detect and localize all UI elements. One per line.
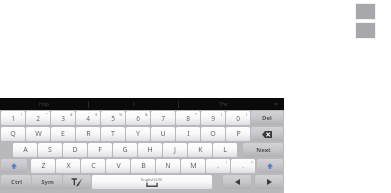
- button[interactable]: U: [151, 127, 175, 141]
- button[interactable]: Y: [126, 127, 150, 141]
- staticText: 4: [86, 114, 90, 123]
- button[interactable]: Next: [243, 143, 283, 157]
- button[interactable]: J: [163, 143, 187, 157]
- staticText: P: [236, 129, 241, 139]
- staticText: ): [246, 112, 248, 117]
- button[interactable]: Left: [223, 175, 251, 189]
- staticText: N: [165, 161, 171, 171]
- button[interactable]: Shift: [1, 159, 27, 173]
- staticText: 6: [136, 114, 140, 123]
- button[interactable]: R: [76, 127, 100, 141]
- staticText: 7: [161, 114, 165, 123]
- button[interactable]: I: [176, 127, 200, 141]
- button[interactable]: S: [38, 143, 62, 157]
- button[interactable]: T: [101, 127, 125, 141]
- staticText: ': [172, 112, 173, 117]
- button[interactable]: Right: [255, 175, 283, 189]
- button[interactable]: 1: [1, 111, 25, 125]
- staticText: Z: [41, 161, 46, 171]
- button[interactable]: More suggestions: [268, 98, 284, 110]
- staticText: Sym: [41, 178, 54, 186]
- staticText: Next: [256, 146, 271, 154]
- staticText: G: [122, 145, 128, 155]
- button[interactable]: The: [179, 98, 268, 110]
- button[interactable]: Hop: [0, 98, 88, 110]
- staticText: 2: [36, 114, 40, 123]
- button[interactable]: 5: [101, 111, 125, 125]
- button[interactable]: A: [13, 143, 37, 157]
- button[interactable]: Z: [31, 159, 55, 173]
- staticText: 0: [236, 114, 240, 123]
- staticText: Hop: [39, 101, 49, 108]
- button[interactable]: 4: [76, 111, 100, 125]
- staticText: L: [223, 145, 227, 155]
- button[interactable]: Backspace: [251, 127, 283, 141]
- staticText: X: [66, 161, 71, 171]
- button[interactable]: 6: [126, 111, 150, 125]
- staticText: !: [21, 112, 23, 117]
- staticText: 3: [61, 114, 65, 123]
- staticText: Ctrl: [11, 178, 22, 186]
- button[interactable]: 0: [226, 111, 250, 125]
- staticText: (: [221, 112, 223, 117]
- staticText: T: [111, 129, 115, 139]
- staticText: S: [48, 145, 52, 155]
- button[interactable]: Q: [1, 127, 25, 141]
- button[interactable]: F: [88, 143, 112, 157]
- button[interactable]: ,: [206, 159, 230, 173]
- staticText: O: [210, 129, 216, 139]
- staticText: 8: [186, 114, 190, 123]
- staticText: I: [133, 101, 135, 108]
- button[interactable]: K: [188, 143, 212, 157]
- staticText: J: [174, 145, 176, 155]
- staticText: M: [190, 161, 197, 171]
- button[interactable]: E: [51, 127, 75, 141]
- button[interactable]: Shift: [257, 159, 283, 173]
- staticText: A: [23, 145, 28, 155]
- button[interactable]: H: [138, 143, 162, 157]
- button[interactable]: W: [26, 127, 50, 141]
- button[interactable]: X: [56, 159, 80, 173]
- staticText: ": [46, 112, 48, 117]
- staticText: Q: [10, 129, 16, 139]
- button[interactable]: N: [156, 159, 180, 173]
- staticText: English(US): [141, 177, 163, 182]
- button[interactable]: V: [106, 159, 130, 173]
- button[interactable]: 9: [201, 111, 225, 125]
- staticText: U: [160, 129, 166, 139]
- button[interactable]: Space: [92, 175, 212, 189]
- button[interactable]: L: [213, 143, 237, 157]
- button[interactable]: C: [81, 159, 105, 173]
- staticText: Y: [136, 129, 140, 139]
- button[interactable]: 8: [176, 111, 200, 125]
- staticText: 5: [111, 114, 115, 123]
- staticText: $: [95, 112, 98, 117]
- button[interactable]: 7: [151, 111, 175, 125]
- button[interactable]: 2: [26, 111, 50, 125]
- staticText: 9: [211, 114, 215, 123]
- button[interactable]: P: [226, 127, 250, 141]
- button[interactable]: B: [131, 159, 155, 173]
- button[interactable]: G: [113, 143, 137, 157]
- button[interactable]: Handwriting: [63, 175, 91, 189]
- staticText: %: [119, 112, 123, 117]
- staticText: .: [242, 162, 244, 170]
- staticText: E: [61, 129, 65, 139]
- button[interactable]: Del: [251, 111, 283, 125]
- button[interactable]: D: [63, 143, 87, 157]
- staticText: W: [35, 129, 42, 139]
- button[interactable]: Ctrl: [1, 175, 31, 189]
- staticText: &: [145, 112, 148, 117]
- button[interactable]: 3: [51, 111, 75, 125]
- staticText: I: [187, 129, 190, 139]
- button[interactable]: O: [201, 127, 225, 141]
- staticText: C: [91, 161, 96, 171]
- staticText: H: [147, 145, 153, 155]
- button[interactable]: .: [231, 159, 255, 173]
- button[interactable]: Sym: [32, 175, 62, 189]
- staticText: Del: [262, 114, 272, 122]
- button[interactable]: M: [181, 159, 205, 173]
